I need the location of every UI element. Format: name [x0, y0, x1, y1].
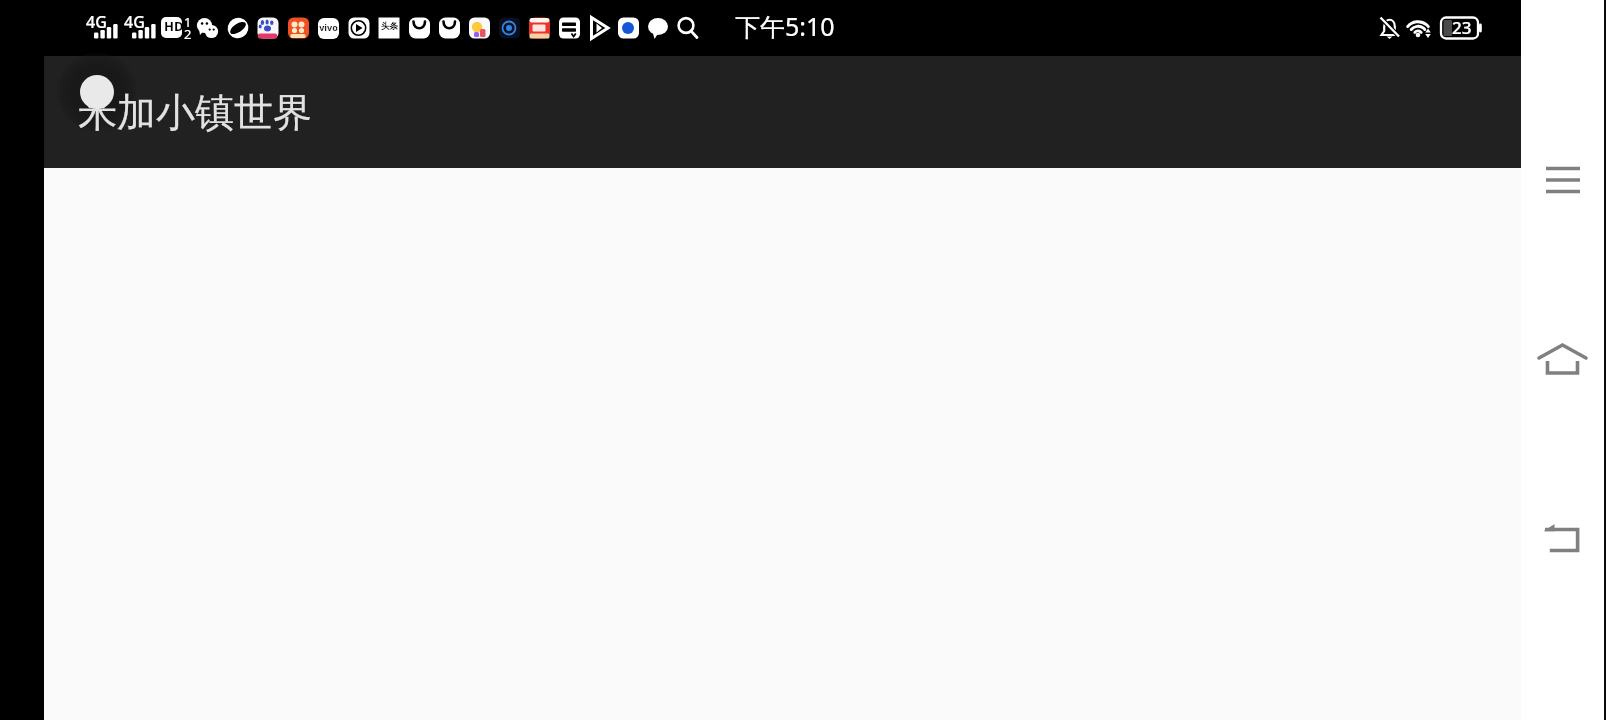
staticText: 4G — [86, 11, 107, 33]
staticText: 2 — [184, 25, 192, 43]
staticText: vivo — [319, 21, 338, 33]
staticText: 4G — [124, 11, 145, 33]
button[interactable]: Home — [1521, 325, 1604, 395]
staticText: 下午5:10 — [735, 9, 835, 43]
staticText: 头条 — [381, 21, 398, 32]
button[interactable]: Recent apps — [1521, 145, 1604, 215]
button[interactable]: Back — [1521, 505, 1604, 575]
staticText: 米加小镇世界 — [78, 88, 312, 137]
staticText: 23 — [1452, 16, 1472, 39]
staticText: HD — [164, 17, 184, 35]
button[interactable]: 米加小镇世界 — [78, 56, 1521, 168]
staticText: 1 — [184, 13, 192, 31]
